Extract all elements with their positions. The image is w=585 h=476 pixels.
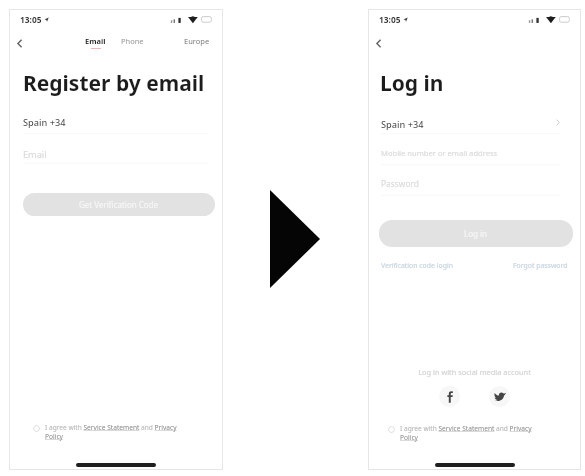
staticText: 13:05 [20,14,42,24]
button[interactable]: Agree to terms checkbox [33,425,40,432]
staticText: Phone [121,36,144,46]
staticText: I agree with Service Statement and Priva… [45,423,191,441]
button[interactable]: Back [10,35,28,51]
other: Next step arrow [270,190,320,288]
staticText: I agree with Service Statement and Priva… [400,424,548,442]
button[interactable]: Spain +34 [23,116,209,134]
staticText: Spain +34 [381,118,424,131]
button[interactable]: Verification code login [381,261,453,270]
staticText: Log in [464,228,488,239]
staticText: 13:05 [379,14,401,24]
button[interactable]: Phone [119,36,145,47]
button[interactable]: Agree to terms checkbox [33,423,191,441]
button[interactable]: Log in [379,220,573,247]
button[interactable]: Password [381,178,560,196]
staticText: Get Verification Code [79,199,159,210]
staticText: Verification code login [381,261,453,270]
staticText: Email [85,36,106,46]
staticText: Mobile number or email address [381,148,498,158]
staticText: Spain +34 [23,116,66,129]
button[interactable]: Email [23,148,209,164]
staticText: Log in with social media account [368,367,581,377]
button[interactable]: Europe [181,36,213,47]
staticText: Password [381,178,419,189]
button[interactable]: Log in with Facebook [439,386,460,407]
button[interactable]: Back [369,35,387,51]
button[interactable]: Email [81,36,109,51]
staticText: Forgot password [513,261,568,270]
button[interactable]: Mobile number or email address [381,148,560,165]
button[interactable]: Forgot password [513,261,568,270]
button[interactable]: Get Verification Code [23,193,215,216]
button[interactable]: Log in with Twitter [489,386,510,407]
staticText: Register by email [23,69,205,98]
staticText: Log in [380,69,444,98]
button[interactable]: Agree to terms checkbox [388,424,548,442]
button[interactable]: Agree to terms checkbox [388,426,395,433]
staticText: Email [23,148,47,161]
staticText: Europe [184,36,210,46]
button[interactable]: Spain +34 [381,118,560,134]
